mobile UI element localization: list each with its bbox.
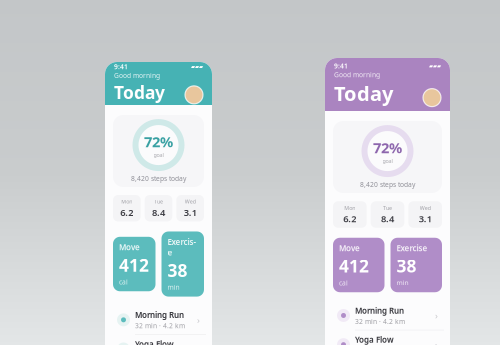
button[interactable]: Morning Run [111, 306, 206, 334]
staticText: 8,420 steps today [131, 174, 186, 183]
staticText: Wed [420, 204, 431, 211]
staticText: ▰▰▰ [191, 63, 203, 70]
staticText: 8.4 [381, 212, 394, 225]
staticText: 38 [396, 254, 416, 277]
staticText: 412 [339, 254, 369, 277]
button[interactable]: Move [333, 238, 384, 292]
staticText: cal [339, 278, 348, 287]
staticText: Tue [154, 198, 163, 205]
staticText: min [167, 283, 179, 292]
staticText: 38 [167, 259, 187, 282]
staticText: 6.2 [343, 212, 356, 225]
staticText: ▰▰▰ [429, 63, 441, 69]
staticText: Today [334, 80, 393, 107]
staticText: Good morning [114, 71, 160, 80]
staticText: Yoga Flow [355, 334, 394, 345]
button[interactable]: Profile [185, 86, 203, 104]
button[interactable]: Yoga Flow [111, 335, 206, 345]
staticText: goal [153, 151, 163, 158]
staticText: 3.1 [419, 212, 432, 225]
staticText: Good morning [334, 70, 380, 79]
staticText: 6.2 [120, 206, 133, 218]
staticText: Mon [344, 204, 355, 211]
staticText: Morning Run [135, 310, 184, 320]
button[interactable]: Exercise [390, 238, 442, 292]
staticText: 72% [144, 132, 173, 151]
button[interactable]: Move [113, 237, 155, 291]
button[interactable]: Exercise [161, 231, 204, 297]
staticText: Today [114, 81, 165, 104]
staticText: Exercise [396, 243, 427, 253]
staticText: Exercise [167, 236, 196, 258]
staticText: Mon [121, 198, 132, 205]
button[interactable]: Profile [423, 89, 441, 107]
staticText: Tue [383, 204, 392, 211]
staticText: 9:41 [334, 61, 348, 70]
button[interactable]: Morning Run [331, 301, 444, 330]
staticText: › [435, 309, 438, 322]
staticText: › [435, 338, 438, 345]
staticText: min [396, 278, 408, 287]
staticText: cal [119, 277, 128, 286]
staticText: 32 min · 4.2 km [355, 317, 405, 326]
button[interactable]: Yoga Flow [331, 330, 444, 345]
staticText: 8.4 [152, 206, 165, 218]
staticText: Move [119, 242, 140, 252]
staticText: › [197, 314, 200, 326]
staticText: 32 min · 4.2 km [135, 321, 185, 330]
staticText: goal [382, 157, 392, 164]
staticText: Morning Run [355, 305, 404, 316]
staticText: 3.1 [184, 206, 197, 218]
staticText: Yoga Flow [135, 339, 174, 345]
staticText: Move [339, 243, 360, 253]
staticText: 412 [119, 253, 149, 276]
staticText: Wed [185, 198, 196, 205]
staticText: 9:41 [114, 62, 128, 71]
staticText: 72% [373, 138, 402, 157]
staticText: 8,420 steps today [360, 180, 415, 189]
